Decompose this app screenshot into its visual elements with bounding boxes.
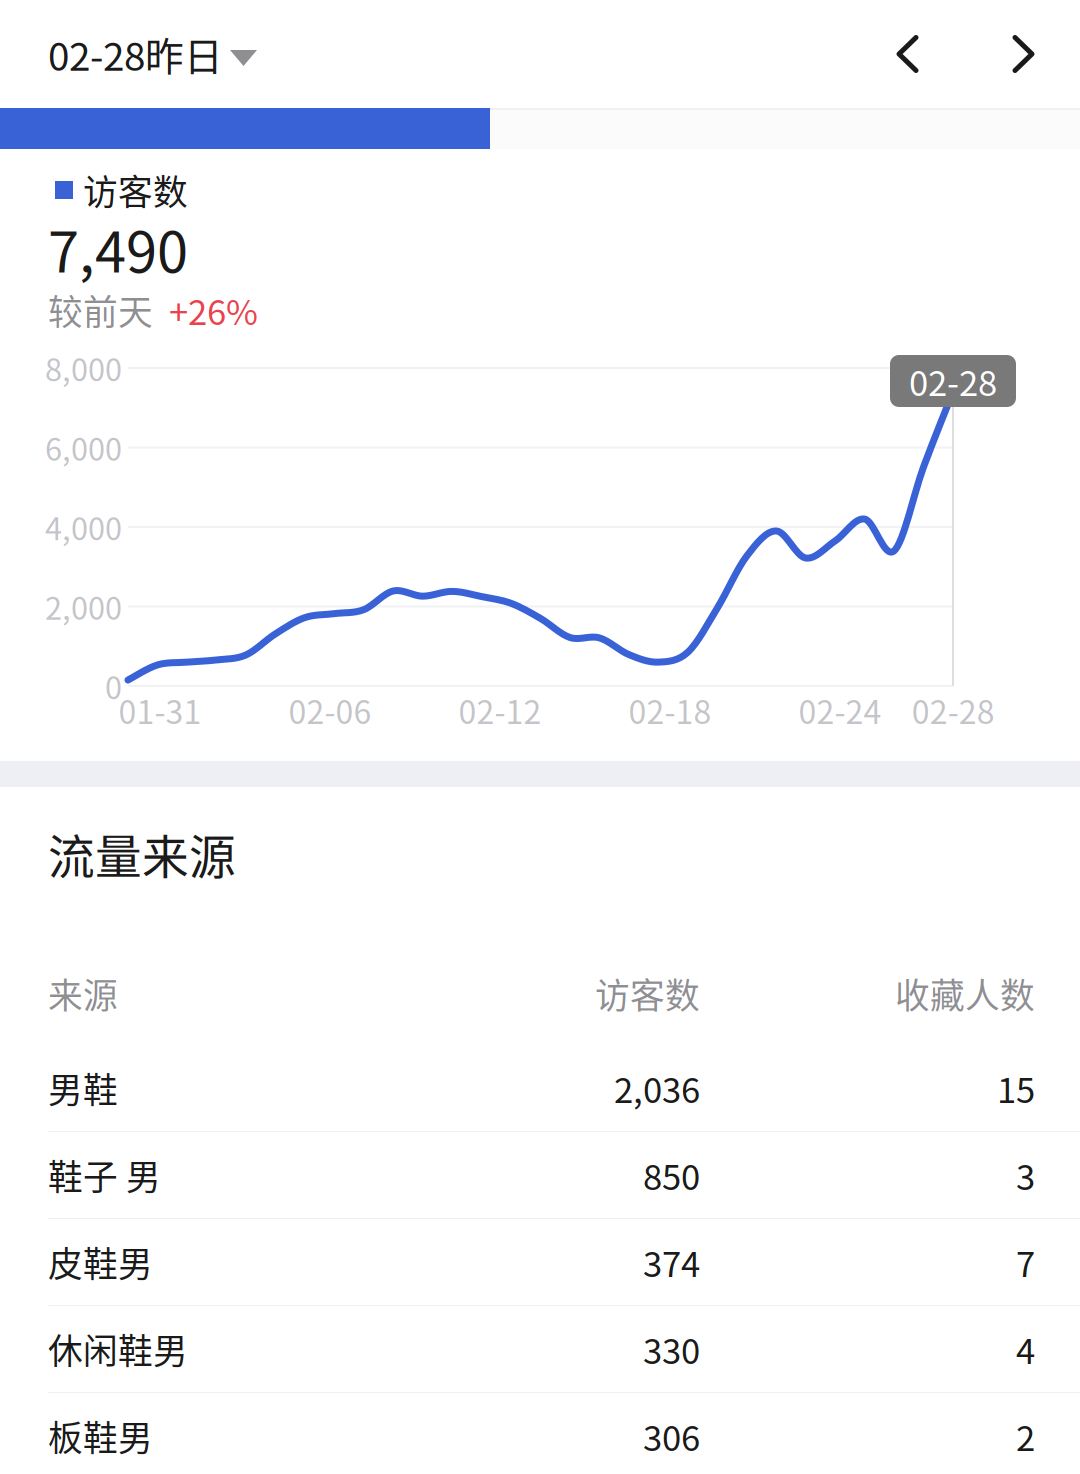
staticText: 4	[1016, 1324, 1035, 1374]
staticText: 板鞋男	[48, 1411, 153, 1461]
staticText: 访客数	[83, 165, 188, 215]
staticText: 较前天	[48, 285, 153, 335]
button[interactable]: 鞋子 男	[0, 1132, 1080, 1219]
staticText: 8,000	[45, 346, 122, 390]
staticText: 02-06	[288, 687, 371, 733]
staticText: 02-28昨日	[48, 26, 223, 82]
staticText: 7	[1016, 1237, 1035, 1287]
staticText: 374	[643, 1237, 700, 1287]
staticText: 皮鞋男	[48, 1237, 153, 1287]
staticText: 2,000	[45, 584, 122, 629]
staticText: 6,000	[45, 425, 122, 470]
staticText: 850	[643, 1150, 700, 1200]
button[interactable]: 02-28昨日	[0, 0, 277, 108]
staticText: 男鞋	[48, 1063, 118, 1113]
staticText: 2	[1016, 1411, 1035, 1461]
button[interactable]: 男鞋	[0, 1045, 1080, 1132]
button[interactable]: 休闲鞋男	[0, 1306, 1080, 1393]
staticText: 休闲鞋男	[48, 1324, 188, 1374]
staticText: 访客数	[595, 968, 700, 1019]
button[interactable]: Next day	[976, 10, 1071, 97]
staticText: 收藏人数	[895, 968, 1035, 1019]
staticText: 02-12	[458, 687, 541, 733]
staticText: 2,036	[614, 1063, 700, 1113]
staticText: 306	[643, 1411, 700, 1461]
staticText: 3	[1016, 1150, 1035, 1200]
staticText: 02-24	[798, 687, 881, 733]
staticText: 15	[997, 1063, 1035, 1113]
staticText: 鞋子 男	[48, 1150, 161, 1200]
button[interactable]: Previous day	[860, 10, 976, 97]
button[interactable]: 板鞋男	[0, 1393, 1080, 1474]
staticText: 4,000	[45, 505, 122, 549]
staticText: 02-28	[909, 356, 997, 406]
staticText: 7,490	[48, 207, 188, 289]
staticText: 来源	[48, 968, 118, 1019]
staticText: 流量来源	[48, 820, 236, 887]
staticText: +26%	[169, 285, 258, 335]
staticText: 02-28	[912, 687, 995, 733]
staticText: 0	[105, 664, 122, 708]
staticText: 330	[643, 1324, 700, 1374]
staticText: 01-31	[118, 687, 201, 733]
staticText: 02-18	[628, 687, 711, 733]
button[interactable]: 皮鞋男	[0, 1219, 1080, 1306]
